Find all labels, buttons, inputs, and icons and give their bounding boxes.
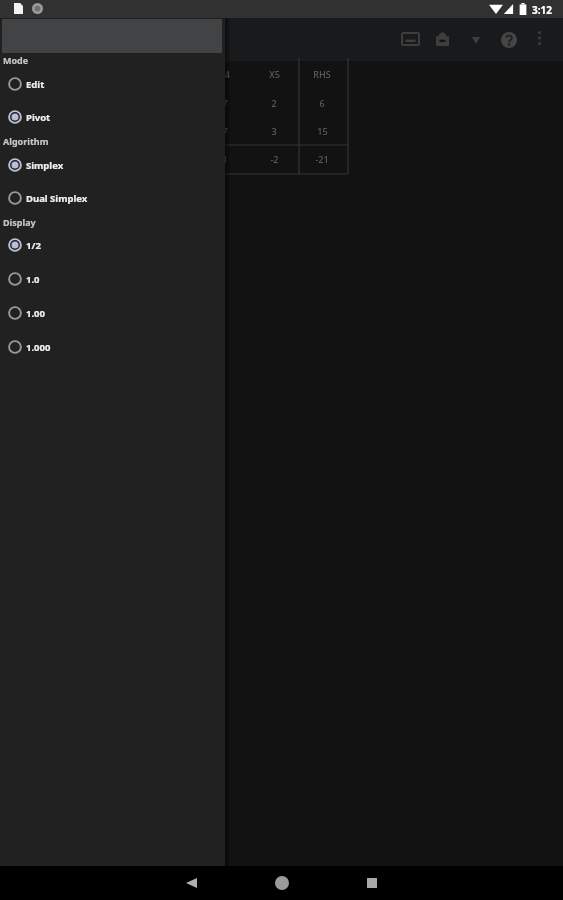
button[interactable]: Back <box>168 866 214 900</box>
staticText: -2 <box>270 153 279 165</box>
staticText: Display <box>3 216 36 228</box>
button[interactable]: Recents <box>349 866 395 900</box>
staticText: Dual Simplex <box>26 192 88 205</box>
button[interactable]: Simplex <box>0 148 225 182</box>
button[interactable]: Pivot <box>0 100 225 134</box>
staticText: -21 <box>315 153 329 165</box>
staticText: 3:12 <box>532 3 552 17</box>
staticText: RHS <box>313 68 331 80</box>
staticText: 2 <box>271 97 277 109</box>
staticText: 6 <box>319 97 325 109</box>
button[interactable]: Dual Simplex <box>0 181 225 215</box>
staticText: Edit <box>26 78 45 91</box>
staticText: 1.000 <box>26 341 51 354</box>
button[interactable]: 1.000 <box>0 330 225 364</box>
staticText: Pivot <box>26 111 51 124</box>
staticText: X4 <box>219 68 230 80</box>
staticText: 1.0 <box>26 273 40 286</box>
button[interactable]: Dropdown <box>463 27 489 53</box>
staticText: Simplex <box>26 159 64 172</box>
staticText: 3 <box>271 125 277 137</box>
staticText: 1 <box>222 153 228 165</box>
button[interactable]: 1.0 <box>0 262 225 296</box>
staticText: 7 <box>222 97 228 109</box>
staticText: Mode <box>3 54 29 66</box>
button[interactable]: 1.00 <box>0 296 225 330</box>
button[interactable]: Edit <box>0 67 225 101</box>
button[interactable]: Home <box>259 866 305 900</box>
button[interactable]: Save <box>428 25 456 53</box>
staticText: 1.00 <box>26 307 45 320</box>
staticText: 15 <box>317 125 328 137</box>
button[interactable]: 1/2 <box>0 228 225 262</box>
button[interactable]: More options <box>526 25 552 51</box>
button[interactable]: Keyboard <box>396 25 424 53</box>
button[interactable]: Help <box>495 26 523 54</box>
staticText: 1/2 <box>26 239 41 252</box>
staticText: 7 <box>222 125 228 137</box>
staticText: X5 <box>269 68 280 80</box>
staticText: Algorithm <box>3 135 49 147</box>
